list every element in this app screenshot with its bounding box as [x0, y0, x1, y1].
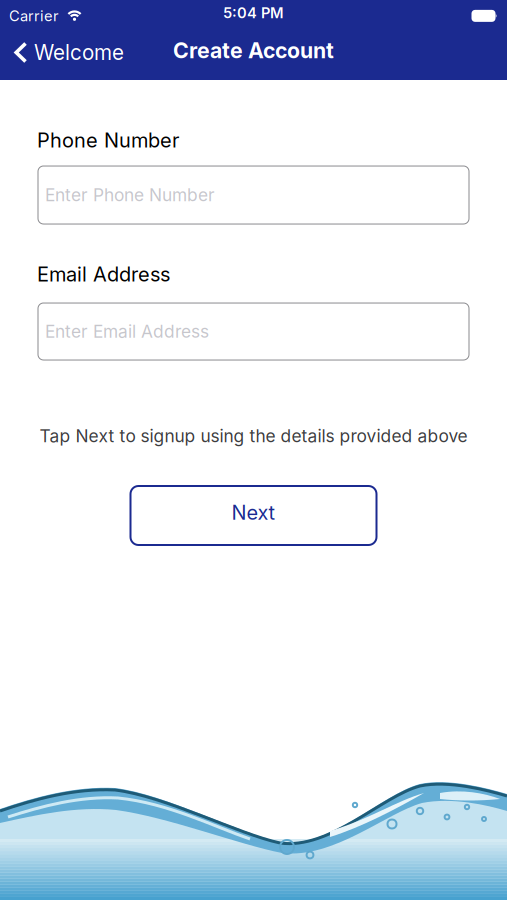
- staticText: Next: [231, 500, 275, 525]
- staticText: Carrier: [9, 7, 59, 25]
- staticText: Welcome: [34, 40, 124, 65]
- staticText: Phone Number: [37, 128, 179, 152]
- staticText: Email Address: [37, 262, 170, 286]
- staticText: Enter Phone Number: [45, 184, 215, 205]
- button[interactable]: Next: [130, 486, 376, 545]
- button[interactable]: Back: [0, 40, 124, 65]
- staticText: Enter Email Address: [45, 321, 209, 342]
- button[interactable]: Enter Phone Number: [38, 166, 469, 224]
- staticText: Tap Next to signup using the details pro…: [39, 425, 467, 446]
- staticText: Create Account: [173, 37, 334, 63]
- staticText: 5:04 PM: [223, 4, 284, 22]
- button[interactable]: Enter Email Address: [38, 303, 469, 360]
